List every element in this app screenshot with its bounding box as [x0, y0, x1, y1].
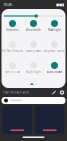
- staticText: Battery Saver: [25, 49, 41, 53]
- button[interactable]: Airplane mode: [44, 41, 65, 58]
- staticText: ◼◼▮: [56, 2, 64, 7]
- button[interactable]: Do Not Disturb: [2, 41, 23, 58]
- staticText: 10:45: [3, 2, 12, 7]
- button[interactable]: Screen Cast: [2, 62, 23, 79]
- staticText: Bluetooth: [26, 28, 41, 32]
- staticText: Pixel Verizon voice: [2, 91, 29, 94]
- button[interactable]: Internet: [2, 20, 23, 37]
- staticText: Internet: [6, 28, 18, 32]
- button[interactable]: Night Light: [23, 62, 44, 79]
- button[interactable]: Settings: [59, 90, 64, 95]
- button[interactable]: Bluetooth: [23, 20, 44, 37]
- staticText: Auto-rotate: [46, 70, 62, 74]
- staticText: Screen Cast: [5, 70, 20, 74]
- button[interactable]: [35, 106, 64, 134]
- staticText: Flashlight: [48, 28, 61, 32]
- button[interactable]: Flashlight: [44, 20, 65, 37]
- staticText: Do Not Disturb: [2, 49, 23, 53]
- staticText: Night Light: [25, 70, 41, 74]
- button[interactable]: [2, 106, 32, 134]
- button[interactable]: Edit: [51, 90, 56, 95]
- staticText: Airplane mode: [44, 49, 65, 53]
- button[interactable]: Auto-rotate: [44, 62, 65, 79]
- button[interactable]: Battery Saver: [23, 41, 44, 58]
